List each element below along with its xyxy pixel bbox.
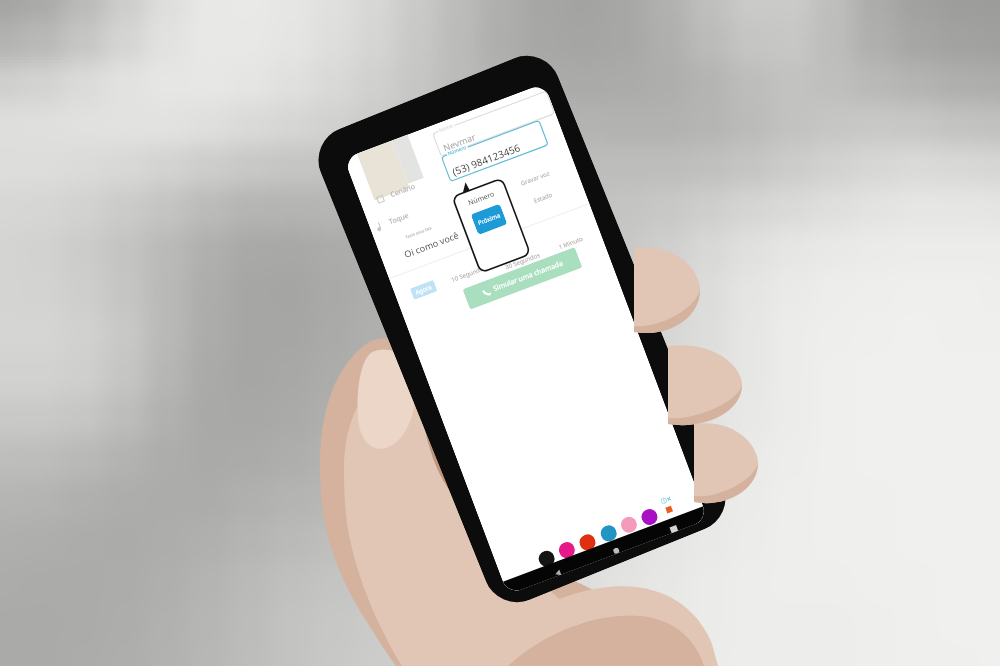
- staticText: Número: [467, 189, 497, 208]
- button[interactable]: Agora: [410, 280, 437, 300]
- staticText: Agora: [414, 283, 433, 297]
- button[interactable]: Stop recording: [665, 506, 673, 513]
- button[interactable]: Colour: [577, 532, 598, 553]
- button[interactable]: Simular uma chamada: [462, 247, 582, 310]
- button[interactable]: Recents: [669, 525, 678, 533]
- button[interactable]: Nome: [431, 86, 555, 157]
- staticText: Neymar: [441, 130, 477, 153]
- staticText: 1 Minuto: [557, 235, 585, 251]
- staticText: Número: [447, 144, 468, 157]
- staticText: Próxima: [477, 211, 502, 227]
- button[interactable]: 1 Minuto: [553, 231, 589, 255]
- button[interactable]: Colour: [639, 507, 660, 527]
- staticText: Nome: [438, 122, 454, 134]
- button[interactable]: Toque: [373, 210, 411, 233]
- button[interactable]: Home: [612, 547, 620, 555]
- staticText: Oi como você: [402, 228, 461, 260]
- button[interactable]: Colour: [536, 548, 557, 569]
- button[interactable]: Próxima: [471, 204, 507, 235]
- button[interactable]: Colour: [619, 514, 639, 535]
- staticText: (53) 984123456: [450, 140, 522, 179]
- staticText: Texto para fala: [405, 225, 433, 240]
- staticText: Gravar voz: [520, 169, 551, 187]
- button[interactable]: 10 Segundos: [446, 260, 492, 287]
- staticText: 30 Segundos: [504, 251, 542, 271]
- button[interactable]: Número: [440, 116, 548, 182]
- button[interactable]: Photo: [357, 141, 409, 200]
- staticText: Cenário: [389, 181, 417, 200]
- staticText: 10 Segundos: [450, 264, 488, 284]
- staticText: Toque: [388, 211, 411, 227]
- staticText: ⓘ✕: [659, 494, 673, 506]
- button[interactable]: Back: [552, 567, 563, 577]
- button[interactable]: Cenário: [375, 181, 417, 205]
- button[interactable]: Colour: [598, 523, 619, 544]
- staticText: Estado: [533, 191, 554, 205]
- button[interactable]: Colour: [557, 540, 577, 560]
- staticText: Simular uma chamada: [492, 259, 564, 294]
- button[interactable]: 30 Segundos: [500, 248, 546, 275]
